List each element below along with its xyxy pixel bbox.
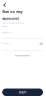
button[interactable]: Back xyxy=(2,3,7,8)
staticText: Password xyxy=(2,43,10,45)
staticText: Enter your email and password xyxy=(2,22,24,24)
staticText: Login xyxy=(19,90,27,94)
staticText: to sign in xyxy=(2,26,7,27)
button[interactable]: Forgot Password? xyxy=(15,55,30,57)
staticText: account xyxy=(2,15,19,21)
button[interactable]: Login xyxy=(2,88,43,96)
staticText: Forgot Password? xyxy=(15,55,30,57)
button[interactable]: Show password xyxy=(39,42,43,45)
staticText: Email address xyxy=(2,32,12,34)
staticText: Get to my xyxy=(2,9,22,14)
